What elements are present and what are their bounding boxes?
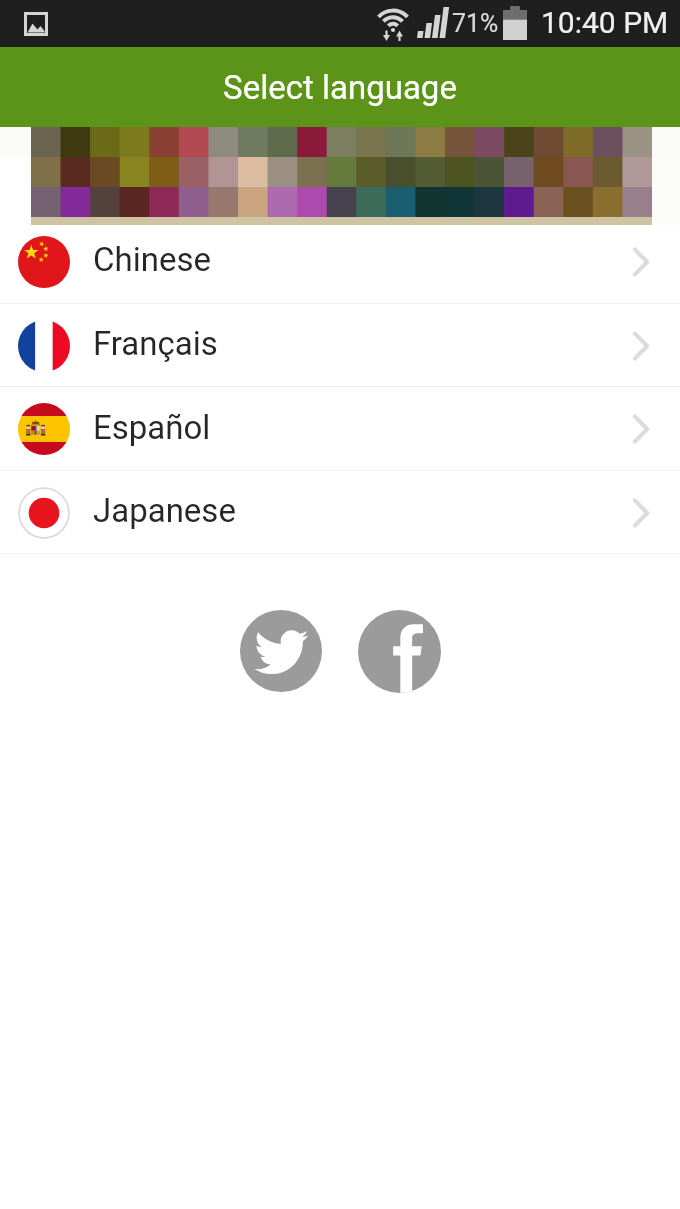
staticText: Japanese <box>93 491 236 530</box>
staticText: Français <box>93 324 218 363</box>
staticText: Chinese <box>93 240 211 279</box>
button[interactable]: Japanese <box>0 471 680 554</box>
button[interactable]: Chinese <box>0 225 680 304</box>
staticText: 71% <box>452 9 499 38</box>
staticText: Select language <box>223 68 457 107</box>
button[interactable]: Español <box>0 387 680 471</box>
button[interactable]: Français <box>0 304 680 387</box>
staticText: 10:40 PM <box>541 5 669 40</box>
button[interactable]: Facebook <box>358 610 441 693</box>
button[interactable]: Twitter <box>240 610 322 692</box>
staticText: Español <box>93 408 211 447</box>
